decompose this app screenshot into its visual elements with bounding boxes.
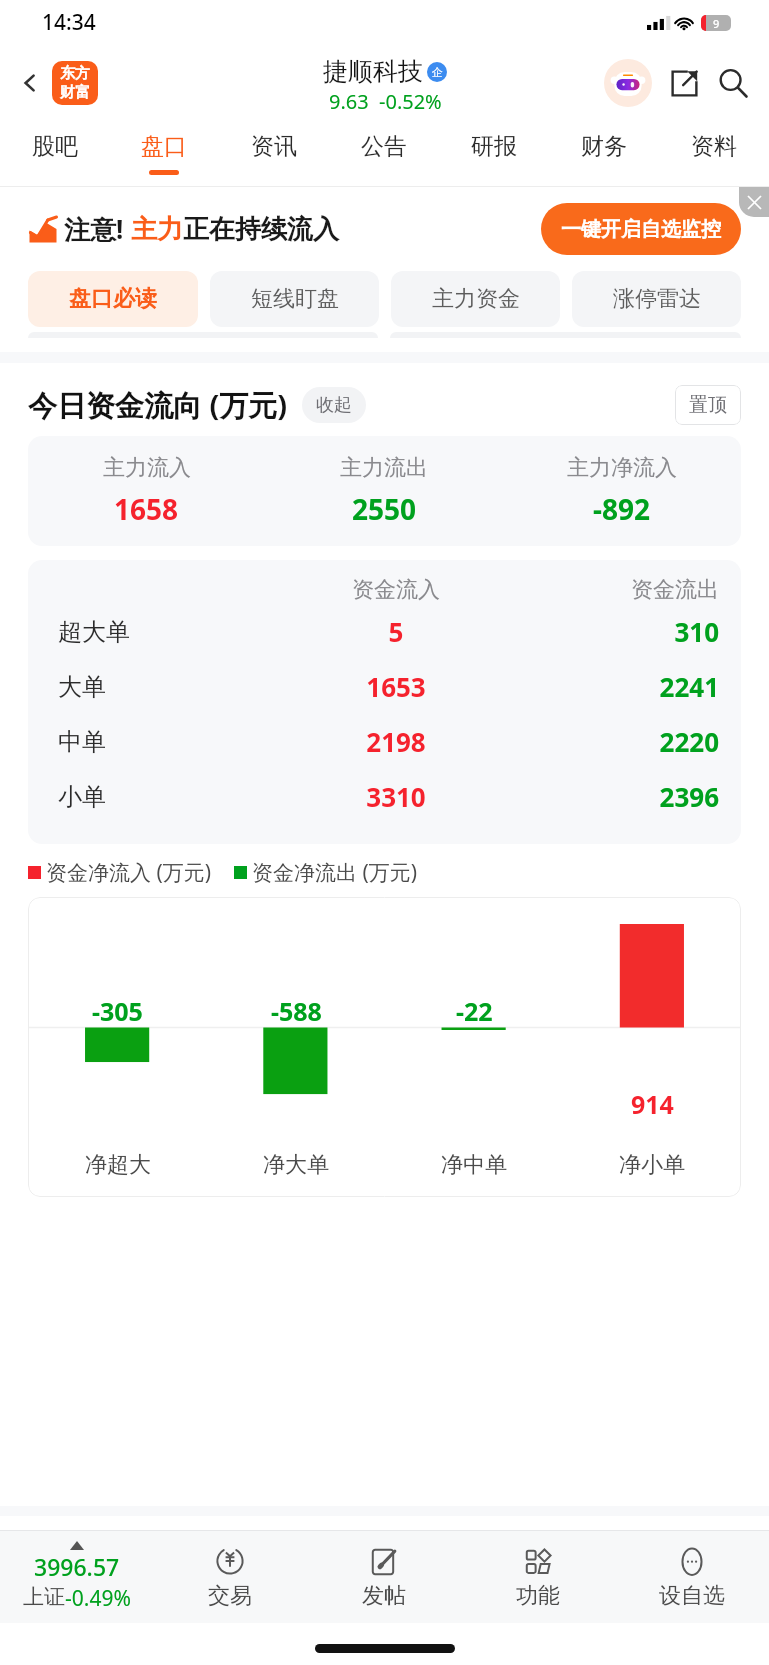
staticText: 上证 xyxy=(23,1584,65,1610)
staticText: 资讯 xyxy=(251,132,297,161)
button[interactable]: 设自选 xyxy=(615,1531,769,1623)
button[interactable]: 3996.57 xyxy=(0,1531,153,1623)
staticText: 功能 xyxy=(516,1582,560,1610)
button[interactable]: 公告 xyxy=(329,121,439,187)
staticText: 交易 xyxy=(208,1582,252,1610)
staticText: 短线盯盘 xyxy=(251,285,339,313)
staticText: 2550 xyxy=(352,490,417,528)
button[interactable]: 功能 xyxy=(461,1531,615,1623)
button[interactable]: Back xyxy=(10,63,50,103)
staticText: 1658 xyxy=(114,490,179,528)
staticText: -0.52% xyxy=(379,88,442,115)
staticText: 主力资金 xyxy=(432,285,520,313)
staticText: 捷顺科技 xyxy=(323,56,423,87)
staticText: 2241 xyxy=(511,669,719,704)
staticText: 东方 xyxy=(60,64,90,83)
staticText: 2198 xyxy=(281,724,511,759)
button[interactable]: 盘口必读 xyxy=(28,271,198,327)
button[interactable]: 短线盯盘 xyxy=(210,271,379,327)
button[interactable]: 资讯 xyxy=(219,121,329,187)
staticText: 企 xyxy=(432,65,443,79)
button[interactable]: 研报 xyxy=(439,121,549,187)
staticText: 收起 xyxy=(316,394,352,417)
staticText: 一键开启自选监控 xyxy=(561,217,721,242)
button[interactable]: 股吧 xyxy=(0,121,109,187)
staticText: 资金净流入 (万元) xyxy=(46,858,212,887)
staticText: 主力流出 xyxy=(340,454,428,482)
staticText: 大单 xyxy=(58,672,281,702)
staticText: 财富 xyxy=(60,83,90,102)
staticText: 914 xyxy=(631,1087,674,1121)
button[interactable]: 置顶 xyxy=(675,385,741,425)
staticText: -305 xyxy=(92,994,143,1028)
button[interactable]: East Money xyxy=(52,61,98,105)
button[interactable]: 一键开启自选监控 xyxy=(541,203,741,255)
staticText: 主力流入 xyxy=(103,454,191,482)
button[interactable]: Share xyxy=(661,60,707,106)
staticText: 主力净流入 xyxy=(567,454,677,482)
staticText: 9.63 xyxy=(329,88,369,115)
staticText: 主力 xyxy=(131,213,183,246)
staticText: 净超大 xyxy=(85,1151,151,1179)
button[interactable]: 主力资金 xyxy=(391,271,560,327)
staticText: 小单 xyxy=(58,782,281,812)
button[interactable]: 交易 xyxy=(153,1531,307,1623)
staticText: 今日资金流向 (万元) xyxy=(28,385,288,425)
staticText: 14:34 xyxy=(42,8,96,37)
staticText: 净小单 xyxy=(619,1151,685,1179)
button[interactable]: 财务 xyxy=(549,121,659,187)
staticText: 3996.57 xyxy=(34,1551,120,1582)
staticText: 2220 xyxy=(511,724,719,759)
staticText: 研报 xyxy=(471,132,517,161)
button[interactable]: 资料 xyxy=(659,121,769,187)
staticText: 资料 xyxy=(691,132,737,161)
button[interactable]: 发帖 xyxy=(307,1531,461,1623)
staticText: 资金流出 xyxy=(511,576,719,604)
button[interactable]: 涨停雷达 xyxy=(572,271,741,327)
staticText: 设自选 xyxy=(659,1582,725,1610)
staticText: 发帖 xyxy=(362,1582,406,1610)
button[interactable]: 收起 xyxy=(302,387,366,423)
staticText: 310 xyxy=(511,614,719,649)
staticText: 公告 xyxy=(361,132,407,161)
button[interactable]: AI Assistant xyxy=(603,58,653,108)
staticText: -22 xyxy=(456,994,493,1028)
staticText: 置顶 xyxy=(689,393,727,417)
button[interactable]: 盘口 xyxy=(109,121,219,187)
staticText: 资金净流出 (万元) xyxy=(252,858,418,887)
staticText: -588 xyxy=(271,994,322,1028)
staticText: 5 xyxy=(281,614,511,649)
staticText: -892 xyxy=(593,490,651,528)
staticText: 股吧 xyxy=(32,132,78,161)
staticText: 盘口 xyxy=(141,132,187,161)
staticText: 2396 xyxy=(511,779,719,814)
button[interactable]: Close xyxy=(739,187,769,217)
staticText: 注意! xyxy=(64,211,124,247)
staticText: 超大单 xyxy=(58,617,281,647)
staticText: 中单 xyxy=(58,727,281,757)
staticText: 1653 xyxy=(281,669,511,704)
staticText: 净大单 xyxy=(263,1151,329,1179)
staticText: 资金流入 xyxy=(281,576,511,604)
staticText: 涨停雷达 xyxy=(613,285,701,313)
staticText: 3310 xyxy=(281,779,511,814)
staticText: 财务 xyxy=(581,132,627,161)
staticText: 盘口必读 xyxy=(69,285,157,313)
button[interactable]: Search xyxy=(709,59,757,107)
staticText: -0.49% xyxy=(65,1584,131,1613)
staticText: 9 xyxy=(713,16,720,31)
staticText: 正在持续流入 xyxy=(183,213,339,246)
staticText: 净中单 xyxy=(441,1151,507,1179)
